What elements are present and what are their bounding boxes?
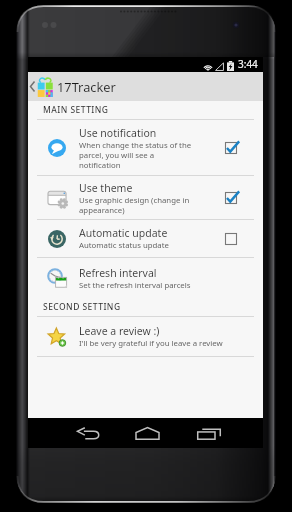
button[interactable]: Leave a review :) [28, 317, 263, 356]
staticText: When change the status of the parcel, yo… [79, 140, 192, 170]
button[interactable]: Checked [223, 140, 239, 156]
staticText: Automatic status update [79, 240, 169, 251]
button[interactable]: Use notification [28, 120, 263, 175]
staticText: Use notification [79, 126, 157, 140]
button[interactable]: Unchecked [223, 231, 239, 247]
button[interactable]: Back [68, 418, 108, 448]
staticText: I'll be very grateful if you leave a rev… [79, 338, 223, 349]
button[interactable]: Recent apps [189, 418, 229, 448]
staticText: Leave a review :) [79, 324, 160, 338]
staticText: 17Tracker [57, 78, 116, 95]
staticText: Refresh interval [79, 266, 157, 280]
button[interactable]: Automatic update [28, 220, 263, 257]
staticText: MAIN SETTING [43, 104, 109, 116]
button[interactable]: Use theme [28, 176, 263, 219]
staticText: Use graphic design (change in appearance… [79, 195, 190, 215]
button[interactable]: Refresh interval [28, 258, 263, 298]
button[interactable]: Navigate up [28, 72, 57, 101]
button[interactable]: Checked [223, 190, 239, 206]
staticText: Set the refresh interval parcels [79, 280, 191, 291]
staticText: Automatic update [79, 226, 168, 240]
staticText: Use theme [79, 181, 133, 195]
staticText: SECOND SETTING [43, 301, 121, 313]
button[interactable]: Home [127, 418, 167, 448]
staticText: 3:44 [238, 57, 258, 71]
